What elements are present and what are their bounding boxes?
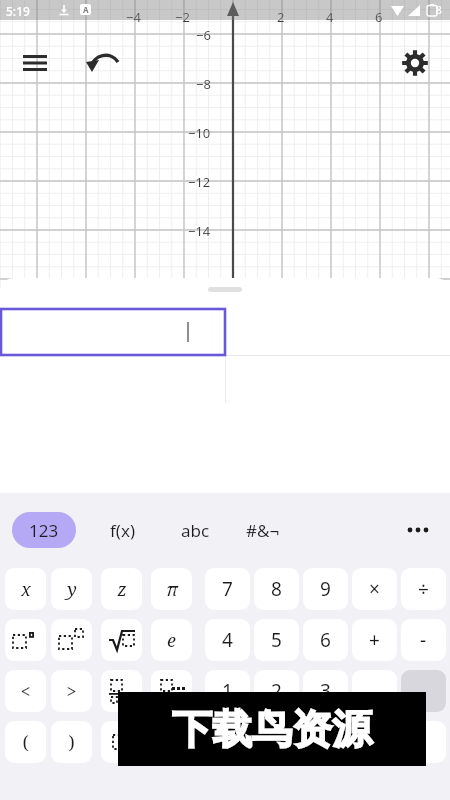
staticText: −4: [126, 8, 141, 26]
button[interactable]: [151, 670, 192, 712]
staticText: .: [274, 729, 280, 755]
staticText: abc: [181, 519, 210, 542]
staticText: 下载鸟资源: [172, 704, 372, 754]
staticText: e: [167, 628, 176, 653]
staticText: 2: [277, 8, 285, 26]
staticText: ÷: [418, 576, 429, 602]
button[interactable]: ×: [352, 568, 397, 610]
button[interactable]: More: [400, 512, 436, 548]
staticText: 7: [222, 576, 233, 602]
staticText: 6: [375, 8, 383, 26]
staticText: 5: [271, 627, 282, 653]
button[interactable]: [101, 721, 142, 763]
staticText: +: [369, 627, 380, 653]
button[interactable]: -: [401, 619, 446, 661]
button[interactable]: 2: [254, 670, 299, 712]
button[interactable]: y: [51, 568, 92, 610]
button[interactable]: (: [5, 721, 46, 763]
button[interactable]: [352, 721, 397, 763]
staticText: (: [22, 730, 29, 755]
staticText: x: [21, 577, 31, 602]
button[interactable]: [303, 721, 348, 763]
staticText: #&¬: [246, 519, 280, 542]
button[interactable]: f(x): [93, 512, 153, 548]
button[interactable]: [101, 619, 142, 661]
staticText: y: [67, 577, 77, 602]
staticText: >: [66, 679, 77, 704]
staticText: ×: [369, 576, 380, 602]
button[interactable]: ): [51, 721, 92, 763]
staticText: 123: [29, 519, 59, 542]
button[interactable]: >: [51, 670, 92, 712]
staticText: -: [420, 627, 427, 653]
staticText: 4: [222, 627, 233, 653]
staticText: z: [117, 577, 127, 602]
staticText: −14: [188, 222, 211, 240]
staticText: −6: [196, 26, 211, 44]
button[interactable]: [401, 721, 446, 763]
button[interactable]: 8: [254, 568, 299, 610]
button[interactable]: 1: [205, 670, 250, 712]
button[interactable]: [352, 670, 397, 712]
button[interactable]: #&¬: [233, 512, 293, 548]
button[interactable]: [101, 670, 142, 712]
button[interactable]: +: [352, 619, 397, 661]
button[interactable]: Menu: [16, 46, 54, 80]
button[interactable]: .: [254, 721, 299, 763]
button[interactable]: abc: [165, 512, 225, 548]
button[interactable]: e: [151, 619, 192, 661]
button[interactable]: [151, 721, 192, 763]
button[interactable]: ÷: [401, 568, 446, 610]
button[interactable]: 4: [205, 619, 250, 661]
staticText: 4: [326, 8, 334, 26]
staticText: 2: [271, 678, 282, 704]
staticText: −12: [188, 173, 211, 191]
staticText: f(x): [110, 519, 136, 542]
staticText: 3: [320, 678, 331, 704]
button[interactable]: π: [151, 568, 192, 610]
button[interactable]: <: [5, 670, 46, 712]
button[interactable]: [51, 619, 92, 661]
staticText: 8: [271, 576, 282, 602]
staticText: −2: [175, 8, 190, 26]
staticText: 1: [222, 678, 233, 704]
button[interactable]: 123: [12, 512, 76, 548]
staticText: ): [68, 730, 75, 755]
staticText: 5:19: [6, 3, 30, 19]
staticText: 8: [436, 3, 442, 17]
staticText: −8: [196, 75, 211, 93]
button[interactable]: 9: [303, 568, 348, 610]
button[interactable]: 3: [303, 670, 348, 712]
staticText: −10: [188, 124, 211, 142]
staticText: 6: [320, 627, 331, 653]
staticText: 9: [320, 576, 331, 602]
button[interactable]: 5: [254, 619, 299, 661]
button[interactable]: Undo: [85, 46, 125, 80]
staticText: <: [20, 679, 31, 704]
button[interactable]: x: [5, 568, 46, 610]
button[interactable]: 7: [205, 568, 250, 610]
staticText: A: [83, 4, 89, 15]
button[interactable]: Settings: [396, 46, 434, 80]
button[interactable]: 0: [205, 721, 250, 763]
button[interactable]: 6: [303, 619, 348, 661]
staticText: 0: [222, 729, 233, 755]
staticText: π: [166, 577, 178, 602]
button[interactable]: [5, 619, 46, 661]
button[interactable]: [0, 308, 226, 356]
button[interactable]: z: [101, 568, 142, 610]
button[interactable]: [401, 670, 446, 712]
